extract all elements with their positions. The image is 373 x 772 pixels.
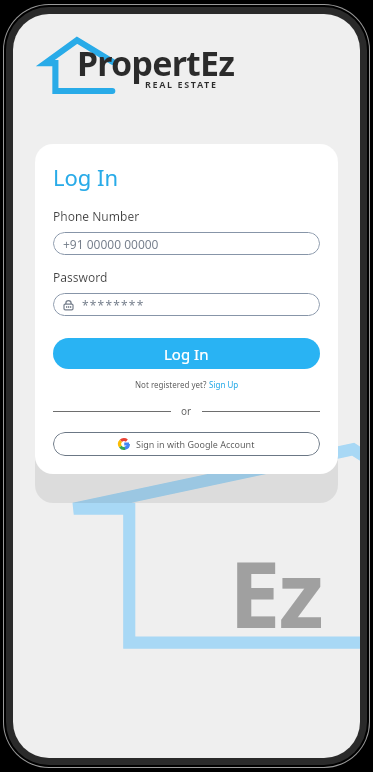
other: Password	[63, 299, 74, 311]
staticText: Log In	[53, 162, 119, 192]
staticText: PropertEz	[77, 40, 235, 86]
button[interactable]: Log In	[53, 338, 320, 369]
staticText: ********	[82, 297, 145, 313]
staticText: Password	[53, 269, 108, 285]
other: Google	[118, 438, 130, 450]
staticText: or	[181, 404, 192, 418]
button[interactable]: Sign Up	[209, 379, 239, 390]
staticText: Log In	[164, 344, 209, 364]
button[interactable]: Password	[53, 293, 320, 316]
staticText: REAL ESTATE	[145, 78, 218, 90]
staticText: Phone Number	[53, 208, 140, 224]
button[interactable]: Google	[53, 432, 320, 456]
button[interactable]: +91 00000 00000	[53, 232, 320, 255]
staticText: Sign in with Google Account	[136, 438, 255, 450]
staticText: +91 00000 00000	[63, 236, 159, 252]
staticText: Sign Up	[209, 379, 239, 390]
staticText: Ez	[229, 530, 322, 655]
staticText: Not registered yet?	[135, 379, 209, 390]
